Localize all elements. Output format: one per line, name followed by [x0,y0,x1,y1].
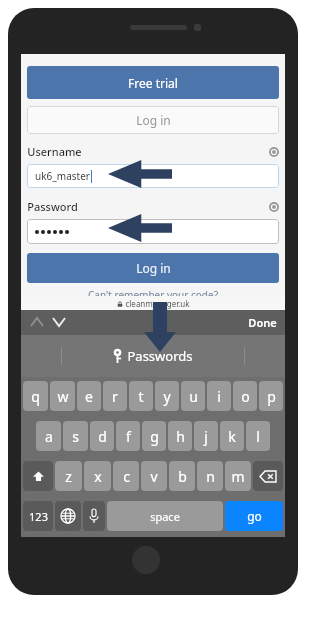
staticText: m [231,467,245,486]
staticText: space [150,509,180,524]
button[interactable]: w [50,381,75,411]
button[interactable]: Shift [23,461,53,491]
staticText: i [217,387,221,406]
staticText: f [126,427,131,446]
staticText: uk6_master [35,169,90,183]
button[interactable]: Change keyboard [55,501,81,531]
button[interactable]: x [84,461,111,491]
button[interactable]: Free trial [27,66,279,99]
other: Help [269,147,279,157]
button[interactable]: Backspace [253,461,283,491]
button[interactable]: y [155,381,179,411]
button[interactable]: m [225,461,251,491]
button[interactable]: 123 [23,501,53,531]
staticText: j [204,427,208,446]
button[interactable]: a [36,421,61,451]
button[interactable]: v [141,461,167,491]
staticText: v [150,467,158,486]
staticText: u [189,387,198,406]
staticText: c [123,467,130,486]
other: Help [269,202,279,212]
button[interactable]: n [197,461,223,491]
staticText: t [138,387,144,406]
staticText: Free trial [128,75,178,91]
staticText: b [178,467,187,486]
staticText: e [85,387,93,406]
staticText: x [94,467,102,486]
button[interactable]: Previous field [31,318,43,326]
staticText: q [31,387,40,406]
button[interactable]: b [169,461,195,491]
button[interactable]: g [142,421,166,451]
button[interactable]: Log in [27,253,279,283]
button[interactable]: p [259,381,283,411]
button[interactable]: h [168,421,192,451]
button[interactable]: Done [248,315,277,330]
staticText: Done [248,315,277,330]
button[interactable]: t [129,381,153,411]
button[interactable]: Passwords [113,347,193,365]
button[interactable]: uk6_master [27,164,279,188]
button[interactable]: space [107,501,223,531]
button[interactable]: go [225,501,283,531]
button[interactable]: e [77,381,101,411]
button[interactable]: l [246,421,270,451]
button[interactable]: j [194,421,218,451]
staticText: n [206,467,215,486]
staticText: s [72,427,79,446]
button[interactable]: r [103,381,127,411]
staticText: Passwords [127,347,193,365]
staticText: Username [27,144,82,159]
button[interactable]: Dictate [83,501,105,531]
button[interactable]: o [233,381,257,411]
staticText: a [45,427,53,446]
button[interactable]: s [63,421,88,451]
button[interactable]: k [220,421,244,451]
staticText: Log in [136,260,171,276]
button[interactable]: Log in [27,106,279,134]
staticText: Password [27,199,78,214]
staticText: p [267,387,276,406]
staticText: z [65,467,72,486]
button[interactable]: u [181,381,205,411]
staticText: 123 [29,509,48,524]
button[interactable] [27,219,279,244]
staticText: w [57,387,69,406]
staticText: y [163,387,171,406]
staticText: Log in [136,112,171,128]
button[interactable]: c [113,461,139,491]
button[interactable]: d [90,421,114,451]
staticText: k [228,427,236,446]
staticText: go [247,508,262,524]
staticText: l [256,427,260,446]
button[interactable]: z [55,461,82,491]
button[interactable]: i [207,381,231,411]
staticText: Can't remember your code? [88,288,218,302]
staticText: h [176,427,185,446]
button[interactable]: q [23,381,48,411]
staticText: cleanmanager.uk [125,298,190,309]
button[interactable]: Home [132,546,160,574]
button[interactable]: Next field [53,318,65,326]
staticText: d [98,427,107,446]
staticText: r [112,387,118,406]
button[interactable]: f [116,421,140,451]
staticText: g [150,427,159,446]
staticText: o [241,387,250,406]
